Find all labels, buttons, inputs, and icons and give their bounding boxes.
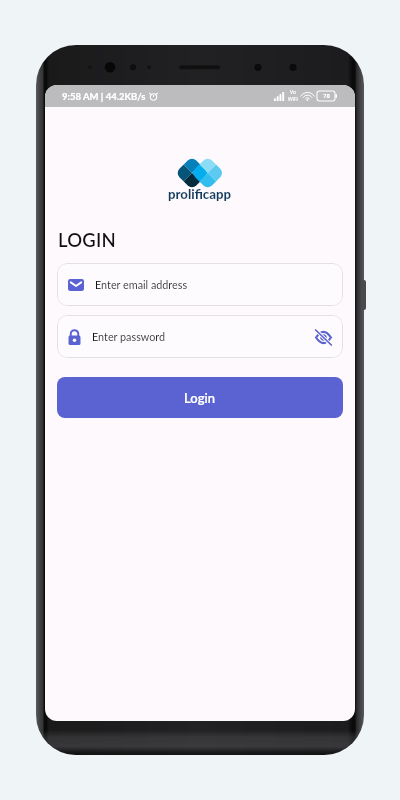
staticText: 78	[323, 92, 330, 100]
staticText: Enter password	[92, 330, 166, 343]
staticText: Vo	[290, 89, 296, 96]
button[interactable]: Show password	[314, 328, 332, 346]
staticText: Enter email address	[95, 278, 188, 291]
staticText: prolificapp	[168, 186, 232, 202]
staticText: WiFi	[288, 96, 298, 103]
button[interactable]: Enter email address	[57, 263, 343, 306]
staticText: 9:58 AM | 44.2KB/s	[62, 91, 146, 102]
button[interactable]: Enter password	[57, 315, 343, 358]
button[interactable]: Login	[57, 377, 343, 418]
staticText: LOGIN	[58, 229, 116, 251]
staticText: Login	[184, 390, 216, 406]
